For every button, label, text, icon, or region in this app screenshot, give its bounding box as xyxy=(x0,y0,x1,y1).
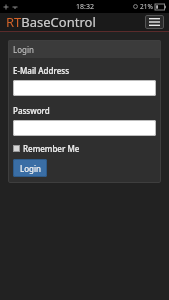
staticText: 18:32 xyxy=(76,2,94,12)
button[interactable]: Menu xyxy=(145,15,164,29)
button[interactable]: Remember Me xyxy=(13,143,80,154)
staticText: E-Mail Address xyxy=(13,65,70,76)
staticText: Login xyxy=(13,44,34,55)
button[interactable] xyxy=(13,120,156,136)
button[interactable]: RTBaseControl xyxy=(6,13,96,31)
staticText: Login xyxy=(20,163,41,174)
staticText: Password xyxy=(13,105,50,116)
staticText: Remember Me xyxy=(23,143,80,154)
staticText: 21% xyxy=(140,2,153,11)
button[interactable] xyxy=(13,80,156,96)
button[interactable]: Login xyxy=(13,159,47,177)
